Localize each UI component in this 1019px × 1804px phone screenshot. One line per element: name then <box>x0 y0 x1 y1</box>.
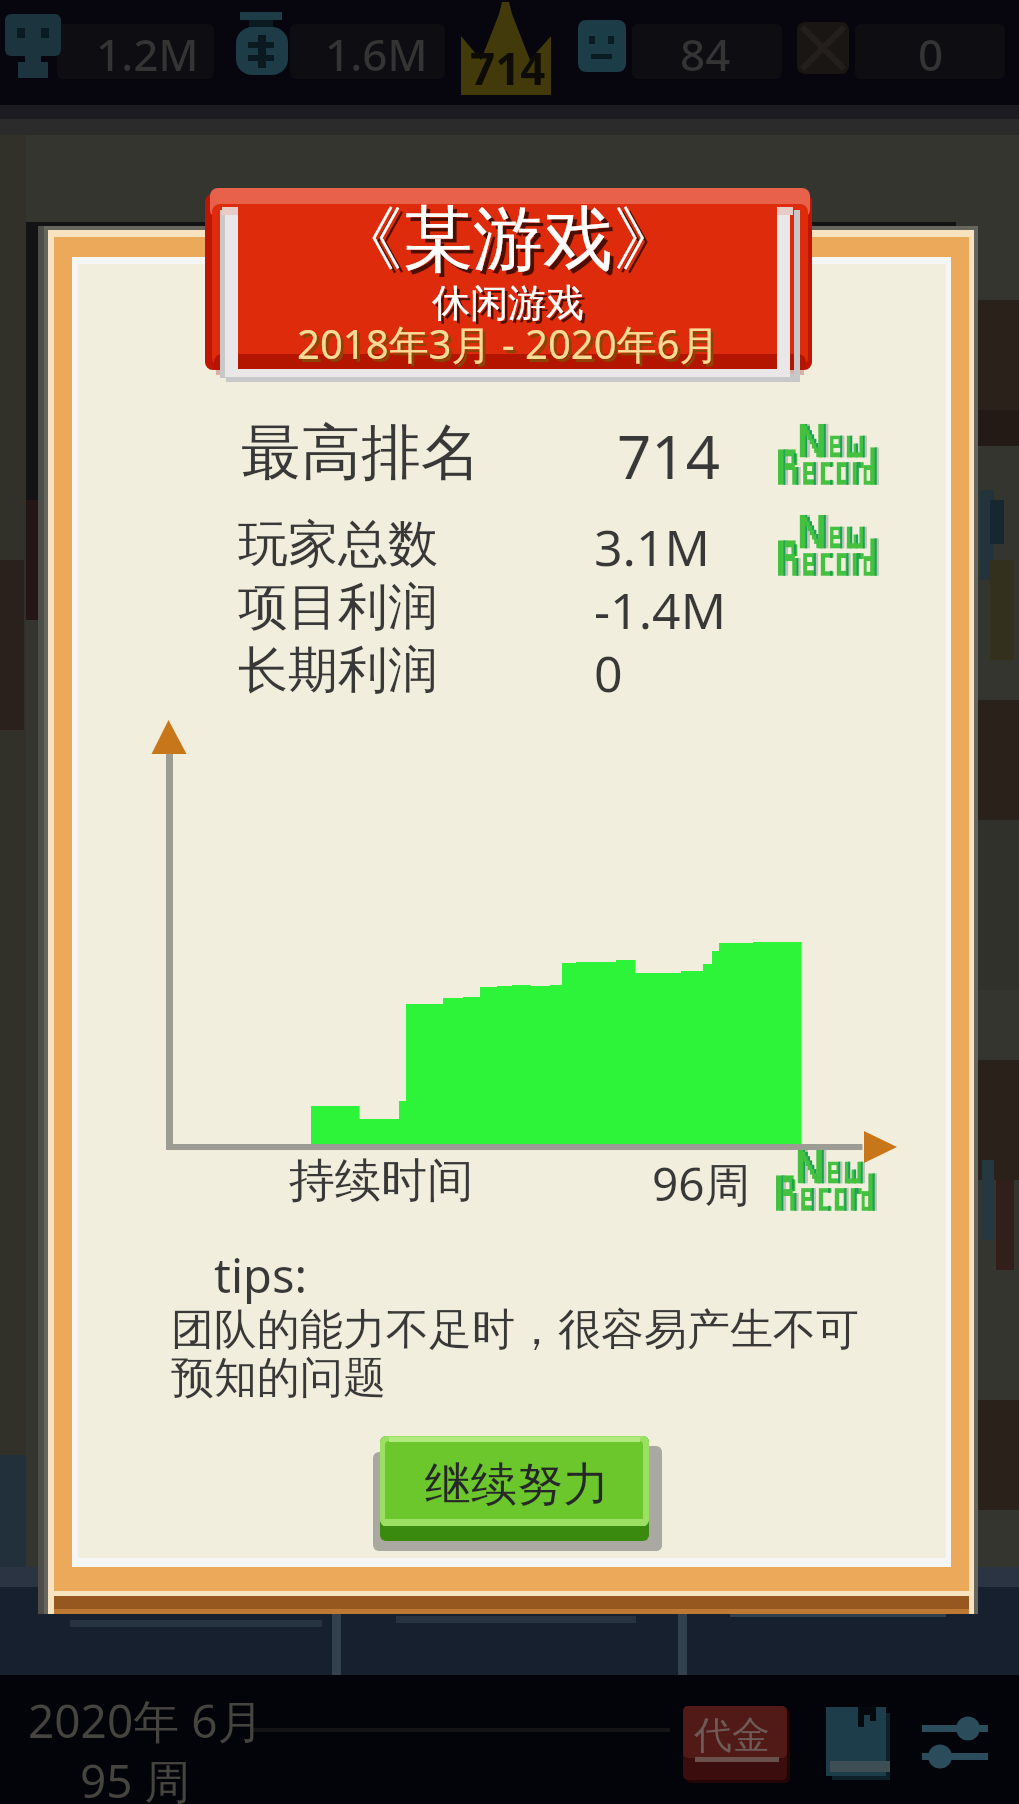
staticText: 《某游戏》 <box>337 200 687 288</box>
button[interactable]: Players 1.2M <box>2 10 217 82</box>
button[interactable]: Settings <box>920 1715 990 1775</box>
staticText: 项目利润 <box>238 576 438 639</box>
staticText: 预知的问题 <box>171 1351 386 1405</box>
staticText: 《某游戏》 <box>333 196 683 284</box>
button[interactable]: 继续努力 <box>373 1434 665 1554</box>
staticText: 96周 <box>652 1152 751 1215</box>
staticText: 团队的能力不足时，很容易产生不可 <box>171 1303 859 1357</box>
button[interactable]: 代金 <box>680 1703 795 1785</box>
staticText: 代金 <box>694 1711 770 1759</box>
button[interactable]: Fans 84 <box>575 10 783 82</box>
staticText: 休闲游戏 <box>435 282 587 330</box>
staticText: 0 <box>918 24 944 84</box>
staticText: 持续时间 <box>289 1152 473 1210</box>
staticText: 继续努力 <box>425 1456 609 1514</box>
staticText: 84 <box>680 24 731 84</box>
button[interactable]: Rank 714 <box>455 0 560 100</box>
staticText: 2018年3月 - 2020年6月 <box>300 319 723 374</box>
staticText: -1.4M <box>594 576 727 644</box>
staticText: 1.2M <box>96 24 199 84</box>
staticText: 95 周 <box>80 1749 191 1804</box>
staticText: 长期利润 <box>238 639 438 702</box>
staticText: 最高排名 <box>241 415 481 491</box>
staticText: 1.6M <box>325 24 428 84</box>
staticText: 2020年 6月 <box>28 1689 264 1752</box>
staticText: 3.1M <box>594 513 710 581</box>
staticText: 0 <box>594 639 623 707</box>
button[interactable]: Bugs 0 <box>795 10 1007 82</box>
staticText: 休闲游戏 <box>432 279 584 327</box>
staticText: 玩家总数 <box>238 513 438 576</box>
button[interactable]: Records <box>824 1705 894 1785</box>
staticText: tips: <box>214 1243 308 1307</box>
staticText: 714 <box>617 415 720 497</box>
button[interactable]: Money 1.6M <box>232 10 445 82</box>
staticText: 2018年3月 - 2020年6月 <box>297 316 720 371</box>
staticText: 714 <box>470 38 546 98</box>
